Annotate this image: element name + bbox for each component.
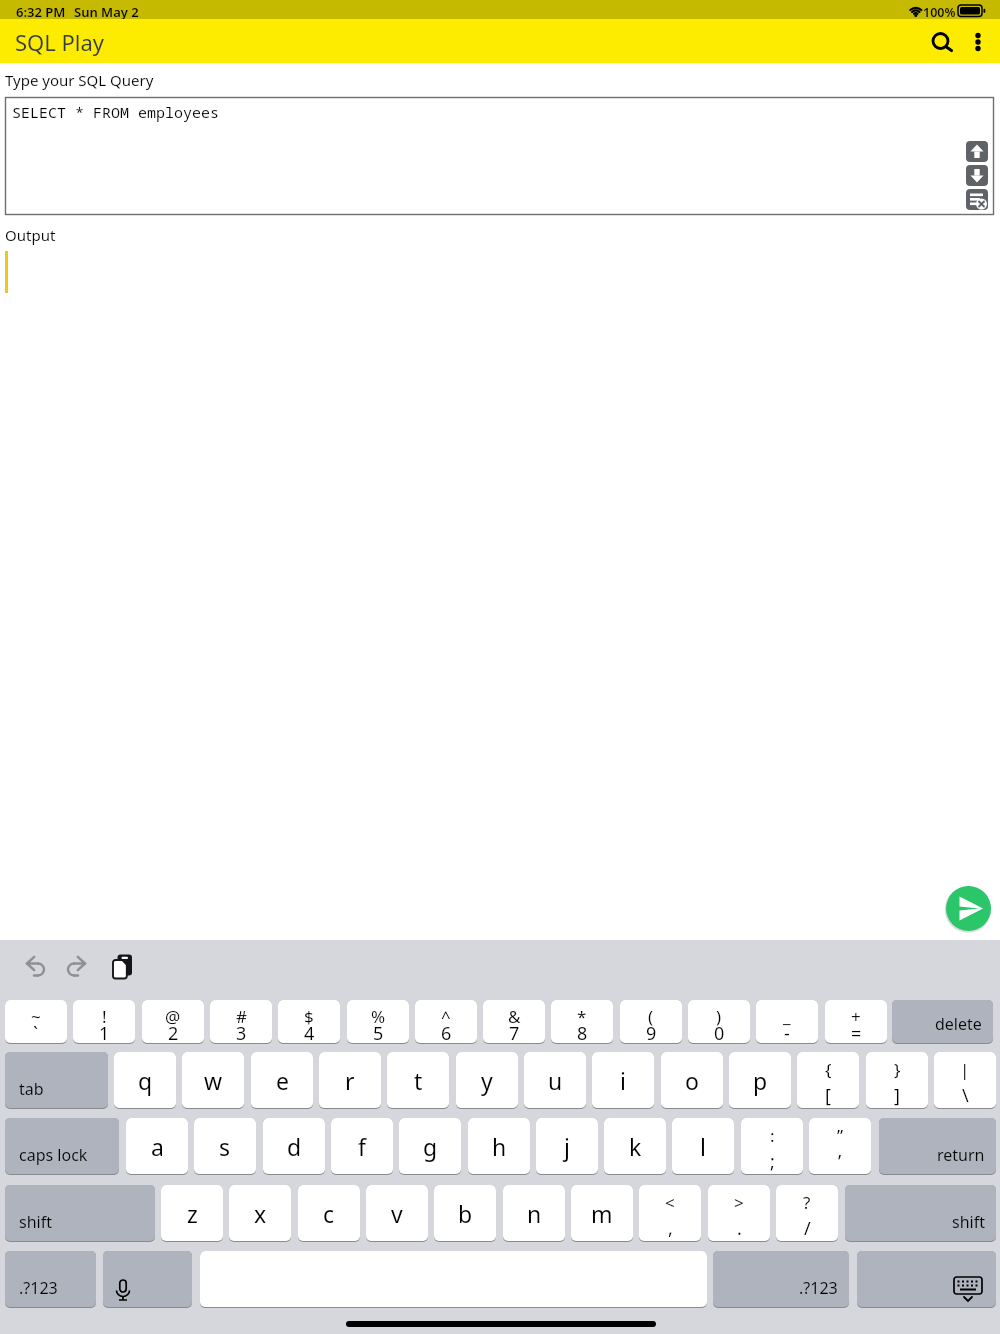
button[interactable]: ” <box>809 1118 871 1174</box>
button[interactable]: z <box>161 1185 223 1241</box>
button[interactable]: < <box>639 1185 701 1241</box>
button[interactable]: .?123 <box>5 1251 96 1307</box>
button[interactable] <box>103 1251 192 1307</box>
button[interactable]: l <box>672 1118 734 1174</box>
button[interactable]: } <box>866 1052 928 1108</box>
staticText: delete <box>935 1013 982 1035</box>
button[interactable]: return <box>879 1118 996 1174</box>
staticText: shift <box>19 1211 52 1233</box>
button[interactable]: k <box>604 1118 666 1174</box>
button[interactable] <box>946 886 991 931</box>
staticText: s <box>219 1131 231 1162</box>
staticText: Type your SQL Query <box>5 70 154 90</box>
button[interactable]: v <box>366 1185 428 1241</box>
button[interactable]: o <box>661 1052 723 1108</box>
button[interactable]: shift <box>845 1185 996 1241</box>
staticText: z <box>187 1198 198 1229</box>
button[interactable] <box>963 26 993 56</box>
staticText: < <box>665 1191 675 1214</box>
button[interactable]: i <box>592 1052 654 1108</box>
button[interactable]: caps lock <box>5 1118 119 1174</box>
button[interactable]: u <box>524 1052 586 1108</box>
staticText: q <box>138 1065 153 1096</box>
button[interactable]: y <box>456 1052 518 1108</box>
staticText: .?123 <box>799 1277 838 1299</box>
button[interactable]: ^ <box>415 1000 477 1043</box>
staticText: u <box>548 1065 563 1096</box>
button[interactable]: j <box>536 1118 598 1174</box>
button[interactable]: > <box>708 1185 770 1241</box>
staticText: + <box>851 1005 861 1028</box>
staticText: n <box>527 1198 542 1229</box>
staticText: SQL Play <box>15 27 105 57</box>
button[interactable] <box>966 141 988 162</box>
staticText: p <box>753 1065 768 1096</box>
staticText: ) <box>716 1005 722 1028</box>
staticText: shift <box>952 1211 985 1233</box>
button[interactable]: c <box>298 1185 360 1241</box>
button[interactable]: ) <box>688 1000 750 1043</box>
staticText: j <box>564 1131 570 1162</box>
button[interactable]: % <box>347 1000 409 1043</box>
button[interactable]: { <box>797 1052 859 1108</box>
staticText: 5 <box>373 1021 384 1043</box>
button[interactable]: _ <box>756 1000 818 1043</box>
button[interactable]: w <box>182 1052 244 1108</box>
button[interactable]: p <box>729 1052 791 1108</box>
button[interactable]: q <box>114 1052 176 1108</box>
staticText: } <box>894 1058 901 1081</box>
staticText: = <box>851 1021 862 1043</box>
staticText: ; <box>770 1149 775 1174</box>
button[interactable]: # <box>210 1000 272 1043</box>
button[interactable]: g <box>399 1118 461 1174</box>
button[interactable]: ~ <box>5 1000 67 1043</box>
staticText: _ <box>783 1005 791 1028</box>
staticText: k <box>629 1131 642 1162</box>
button[interactable]: t <box>387 1052 449 1108</box>
button[interactable] <box>857 1251 996 1307</box>
button[interactable]: e <box>251 1052 313 1108</box>
staticText: ~ <box>31 1005 41 1028</box>
staticText: [ <box>825 1083 831 1108</box>
button[interactable]: .?123 <box>713 1251 849 1307</box>
button[interactable]: f <box>331 1118 393 1174</box>
button[interactable]: @ <box>142 1000 204 1043</box>
button[interactable]: d <box>263 1118 325 1174</box>
staticText: m <box>591 1198 613 1229</box>
button[interactable]: tab <box>5 1052 108 1108</box>
button[interactable]: r <box>319 1052 381 1108</box>
button[interactable]: x <box>229 1185 291 1241</box>
button[interactable]: SELECT * FROM employees <box>5 97 994 215</box>
staticText: caps lock <box>19 1144 88 1166</box>
button[interactable]: ! <box>73 1000 135 1043</box>
button[interactable] <box>926 26 956 56</box>
staticText: x <box>254 1198 267 1229</box>
staticText: l <box>700 1131 706 1162</box>
button[interactable]: : <box>741 1118 803 1174</box>
button[interactable]: ( <box>620 1000 682 1043</box>
button[interactable]: m <box>571 1185 633 1241</box>
staticText: | <box>960 1058 970 1081</box>
button[interactable]: | <box>934 1052 996 1108</box>
button[interactable]: h <box>468 1118 530 1174</box>
staticText: : <box>770 1124 775 1147</box>
staticText: 8 <box>577 1021 588 1043</box>
button[interactable]: delete <box>892 1000 993 1043</box>
staticText: w <box>204 1065 223 1096</box>
button[interactable] <box>966 165 988 186</box>
button[interactable]: * <box>551 1000 613 1043</box>
staticText: { <box>825 1058 832 1081</box>
button[interactable]: s <box>194 1118 256 1174</box>
button[interactable]: + <box>825 1000 887 1043</box>
button[interactable]: a <box>126 1118 188 1174</box>
staticText: f <box>358 1131 366 1162</box>
staticText: # <box>236 1005 247 1028</box>
button[interactable]: shift <box>5 1185 155 1241</box>
button[interactable] <box>966 189 988 210</box>
button[interactable]: b <box>434 1185 496 1241</box>
button[interactable]: ? <box>776 1185 838 1241</box>
button[interactable]: $ <box>278 1000 340 1043</box>
button[interactable]: & <box>483 1000 545 1043</box>
button[interactable]: n <box>503 1185 565 1241</box>
